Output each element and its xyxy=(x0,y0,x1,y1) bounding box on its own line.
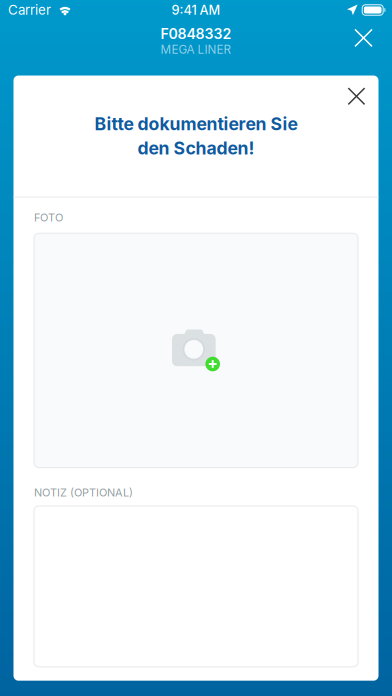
staticText: den Schaden! xyxy=(137,137,254,159)
button[interactable]: Add photo xyxy=(34,233,358,468)
staticText: Bitte dokumentieren Sie xyxy=(94,113,297,134)
staticText: F0848332 xyxy=(160,25,231,42)
staticText: MEGA LINER xyxy=(160,42,231,57)
button[interactable]: Close xyxy=(334,75,378,115)
button[interactable]: Close xyxy=(340,20,392,62)
staticText: FOTO xyxy=(34,211,63,224)
staticText: 9:41 AM xyxy=(171,2,220,18)
staticText: Carrier xyxy=(8,2,51,18)
staticText: NOTIZ (OPTIONAL) xyxy=(34,486,133,499)
